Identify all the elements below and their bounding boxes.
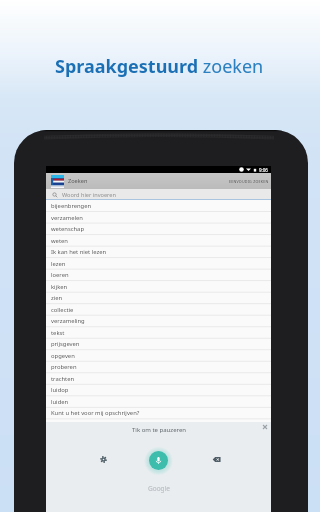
button[interactable]: verzameling [46, 315, 271, 327]
staticText: prijsgeven [51, 340, 80, 348]
button[interactable]: luidop [46, 384, 271, 396]
staticText: luiden [51, 398, 69, 406]
staticText: EENVOUDIG ZOEKEN [229, 179, 269, 184]
button[interactable]: kijken [46, 281, 271, 293]
staticText: proberen [51, 363, 77, 371]
button[interactable]: App icon [51, 175, 64, 188]
button[interactable]: trachten [46, 373, 271, 385]
button[interactable]: bijeenbrengen [46, 200, 271, 212]
button[interactable]: tekst [46, 327, 271, 339]
staticText: zien [51, 294, 63, 302]
staticText: 9:06 [259, 167, 268, 173]
button[interactable]: lezen [46, 258, 271, 270]
staticText: verzameling [51, 317, 85, 325]
staticText: loeren [51, 271, 69, 279]
button[interactable]: Kunt u het voor mij opschrijven? [46, 407, 271, 419]
staticText: trachten [51, 375, 75, 383]
button[interactable]: Woord hier invoeren [46, 189, 271, 200]
button[interactable]: prijsgeven [46, 338, 271, 350]
button[interactable]: verzamelen [46, 212, 271, 224]
staticText: weten [51, 237, 68, 245]
button[interactable]: EENVOUDIG ZOEKEN [225, 179, 271, 184]
staticText: verzamelen [51, 214, 83, 222]
staticText: wetenschap [51, 225, 84, 233]
button[interactable]: zien [46, 292, 271, 304]
staticText: Kunt u het voor mij opschrijven? [51, 409, 140, 417]
button[interactable]: Microphone [149, 451, 168, 470]
button[interactable]: Backspace [209, 452, 223, 466]
staticText: opgeven [51, 352, 75, 360]
button[interactable]: wetenschap [46, 223, 271, 235]
button[interactable]: proberen [46, 361, 271, 373]
staticText: Tik om te pauzeren [132, 426, 186, 434]
button[interactable]: opgeven [46, 350, 271, 362]
staticText: luidop [51, 386, 69, 394]
button[interactable]: weten [46, 235, 271, 247]
staticText: tekst [51, 329, 65, 337]
button[interactable]: schrijven [46, 419, 271, 431]
button[interactable]: Ik kan het niet lezen [46, 246, 271, 258]
button[interactable]: luiden [46, 396, 271, 408]
staticText: Spraakgestuurd zoeken [55, 54, 264, 79]
staticText: Ik kan het niet lezen [51, 248, 107, 256]
staticText: Woord hier invoeren [62, 191, 116, 199]
button[interactable]: collectie [46, 304, 271, 316]
button[interactable]: Settings [96, 452, 110, 466]
staticText: bijeenbrengen [51, 202, 92, 210]
staticText: Google [148, 484, 170, 493]
button[interactable]: Close [260, 422, 269, 431]
staticText: lezen [51, 260, 66, 268]
button[interactable]: loeren [46, 269, 271, 281]
staticText: kijken [51, 283, 68, 291]
staticText: Zoeken [68, 177, 88, 185]
staticText: collectie [51, 306, 74, 314]
staticText: schrijven [51, 421, 76, 429]
